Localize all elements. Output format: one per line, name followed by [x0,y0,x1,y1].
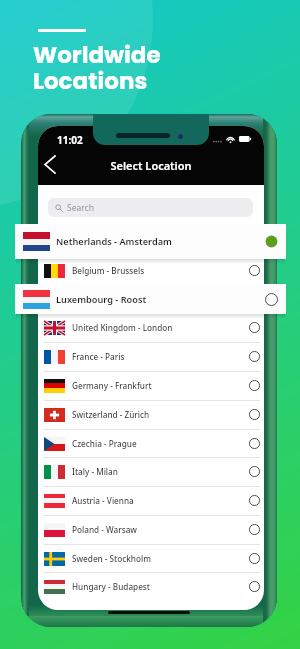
staticText: Austria - Vienna [72,495,134,506]
button[interactable]: Back [38,150,64,178]
staticText: Worldwide Locations [33,39,161,97]
staticText: United Kingdom - London [72,322,173,333]
button[interactable]: Netherlands - Amsterdam [15,224,286,259]
staticText: Luxembourg - Roost [72,294,152,305]
button[interactable]: Netherlands - Amsterdam [38,227,264,256]
button[interactable]: Czechia - Prague [38,429,264,458]
button[interactable]: Poland - Warsaw [38,515,264,544]
button[interactable]: Germany - Frankfurt [38,371,264,400]
button[interactable]: Sweden - Stockholm [38,544,264,573]
button[interactable]: Search [48,198,253,217]
staticText: Switzerland - Zürich [72,409,150,420]
other: Cellular signal [213,140,222,143]
staticText: Select Location [38,158,264,173]
staticText: Netherlands - Amsterdam [56,235,172,248]
other: Wi-Fi [226,136,235,143]
staticText: France - Paris [72,351,125,362]
staticText: Luxembourg - Roost [56,293,147,306]
staticText: Belgium - Brussels [72,265,145,276]
staticText: Search [67,202,94,214]
staticText: Germany - Frankfurt [72,380,152,391]
button[interactable]: Italy - Milan [38,457,264,486]
staticText: 11:02 [57,133,83,147]
button[interactable]: Belgium - Brussels [38,256,264,285]
button[interactable]: Luxembourg - Roost [15,284,286,314]
button[interactable]: United Kingdom - London [38,313,264,342]
staticText: Hungary - Budapest [72,581,150,592]
button[interactable]: Hungary - Budapest [38,572,264,601]
staticText: Italy - Milan [72,466,118,477]
staticText: Sweden - Stockholm [72,553,151,564]
button[interactable]: France - Paris [38,342,264,371]
button[interactable]: Luxembourg - Roost [38,285,264,314]
button[interactable]: Austria - Vienna [38,486,264,515]
staticText: Netherlands - Amsterdam [72,236,174,247]
other: Battery [239,136,251,142]
button[interactable]: Switzerland - Zürich [38,400,264,429]
staticText: Czechia - Prague [72,438,137,449]
staticText: Poland - Warsaw [72,524,137,535]
